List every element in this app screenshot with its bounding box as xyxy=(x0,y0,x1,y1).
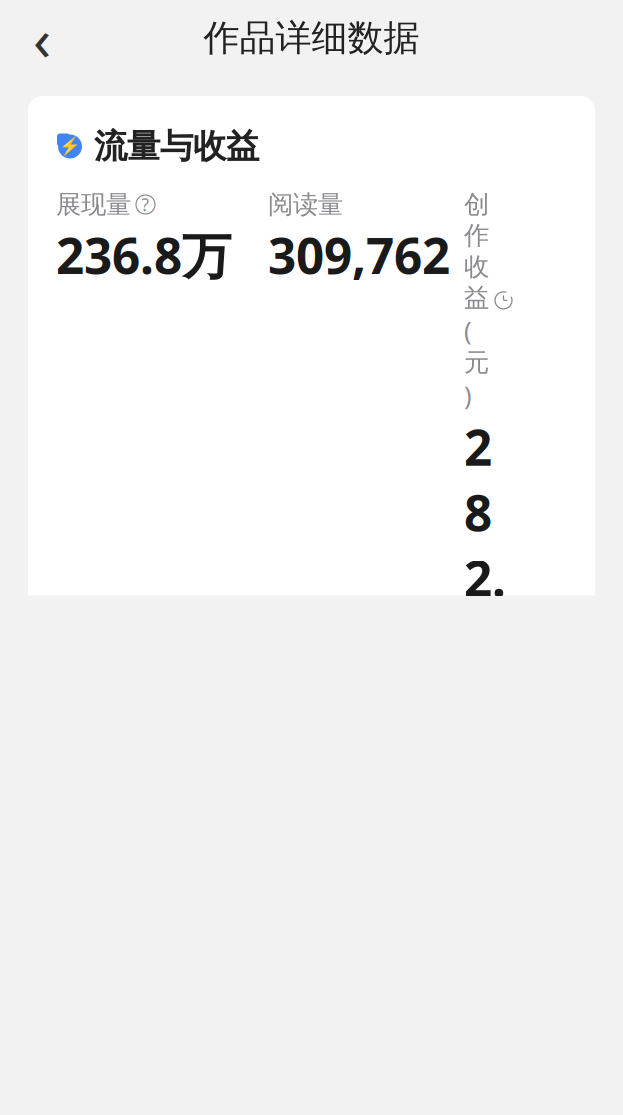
staticText: ‹ xyxy=(33,0,51,77)
staticText: 282.61 xyxy=(464,414,506,741)
staticText: 阅读量 xyxy=(268,189,343,220)
staticText: 236.8万 xyxy=(56,222,231,288)
staticText: 展现量 xyxy=(56,189,131,220)
staticText: ? xyxy=(141,193,149,216)
button[interactable]: Back xyxy=(14,10,70,66)
staticText: ⚡ xyxy=(59,137,81,156)
staticText: 创作收益(元) xyxy=(464,189,489,412)
staticText: 作品详细数据 xyxy=(203,16,419,60)
staticText: 流量与收益 xyxy=(94,126,259,167)
staticText: 309,762 xyxy=(268,222,450,288)
